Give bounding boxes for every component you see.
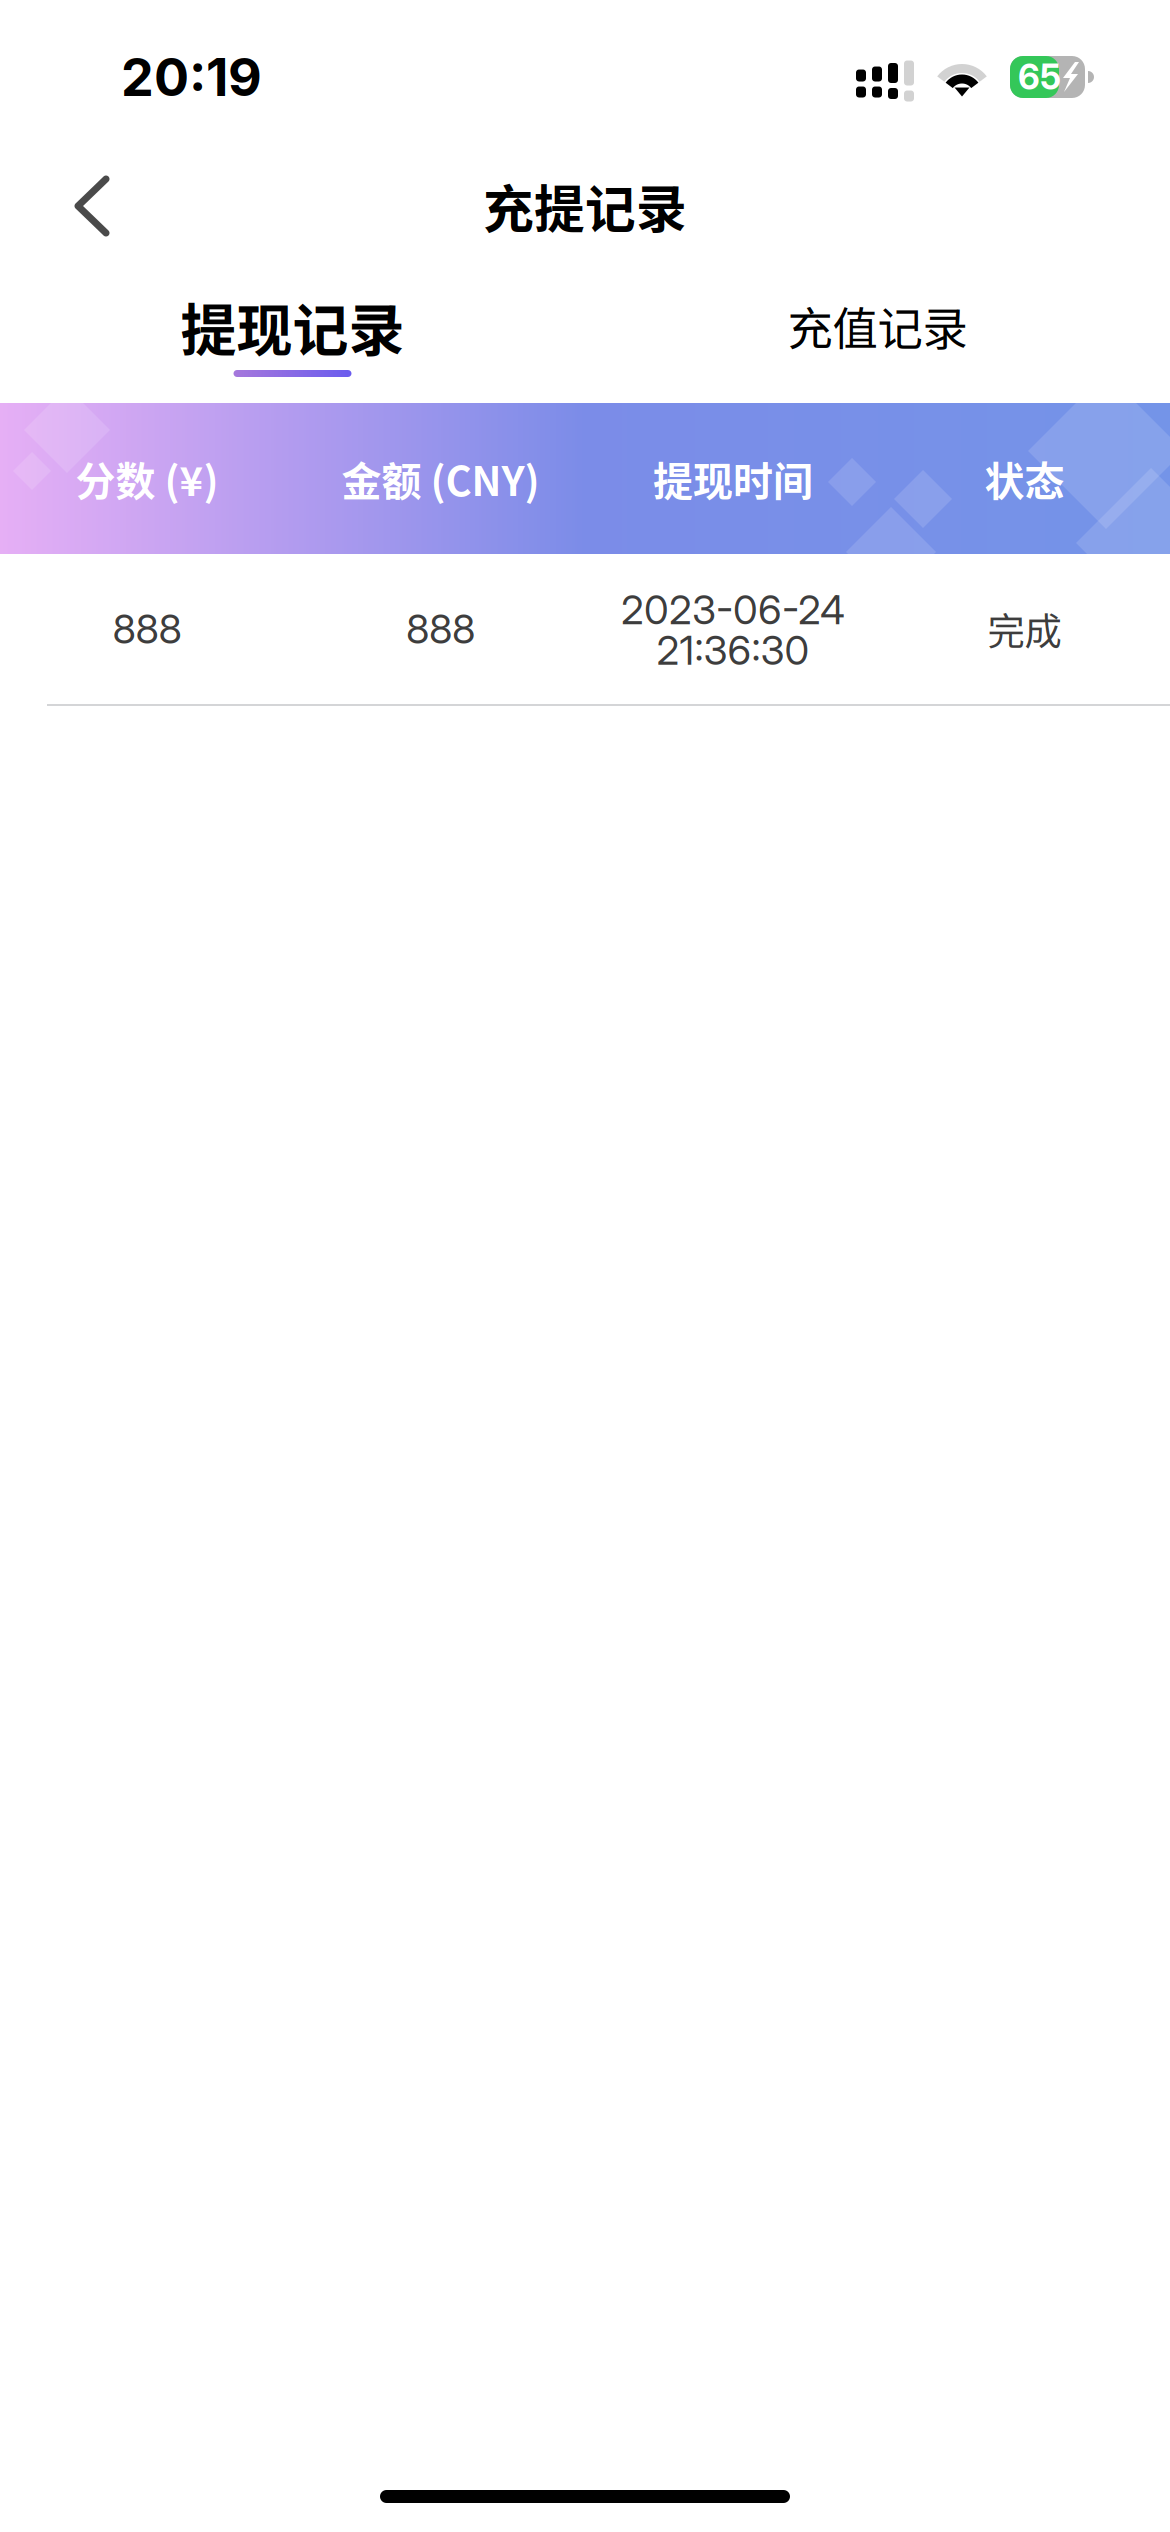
staticText: 65 <box>1018 56 1061 98</box>
button[interactable]: 888 <box>0 554 1170 706</box>
staticText: 21:36:30 <box>656 626 809 674</box>
staticText: 20:19 <box>121 45 262 108</box>
staticText: 提现时间 <box>653 449 813 507</box>
staticText: 888 <box>406 605 475 653</box>
button[interactable]: 提现记录 <box>0 296 585 403</box>
staticText: 充值记录 <box>787 293 967 359</box>
staticText: 888 <box>112 605 181 653</box>
staticText: 金额 (CNY) <box>341 449 539 507</box>
staticText: 2023-06-24 <box>621 586 845 634</box>
staticText: 状态 <box>984 449 1064 507</box>
button[interactable]: Back <box>48 150 136 262</box>
staticText: 充提记录 <box>483 169 687 243</box>
staticText: 提现记录 <box>180 285 404 367</box>
staticText: 分数 (¥) <box>75 449 218 507</box>
button[interactable]: 充值记录 <box>585 296 1170 403</box>
staticText: 完成 <box>987 602 1061 656</box>
